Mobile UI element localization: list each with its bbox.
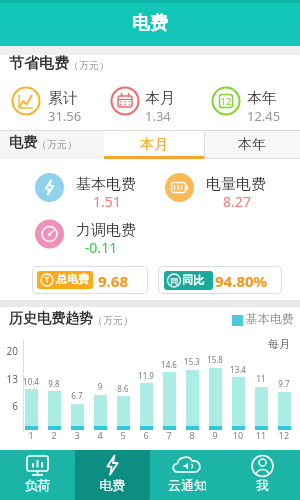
- staticText: 云通知: [150, 477, 225, 493]
- staticText: 94.80%: [215, 271, 268, 291]
- staticText: 节省电费: [9, 54, 69, 73]
- staticText: 12: [272, 429, 296, 441]
- staticText: 电量电费: [206, 175, 266, 194]
- button[interactable]: [0, 450, 75, 500]
- button[interactable]: 总电费: [32, 266, 148, 294]
- staticText: 11.9: [134, 370, 158, 381]
- staticText: 1: [19, 429, 43, 441]
- staticText: -0.11: [70, 238, 132, 257]
- staticText: 9: [203, 429, 227, 441]
- staticText: 每月: [268, 337, 290, 351]
- staticText: 7: [157, 429, 181, 441]
- staticText: 15.8: [203, 354, 227, 365]
- staticText: 2: [42, 429, 66, 441]
- button[interactable]: [75, 450, 150, 500]
- staticText: 14.6: [157, 359, 181, 370]
- staticText: （万元）: [37, 138, 77, 151]
- staticText: 13.4: [226, 364, 250, 375]
- staticText: 10: [226, 429, 250, 441]
- staticText: 电费: [75, 477, 150, 493]
- button[interactable]: [160, 168, 290, 212]
- button[interactable]: [20, 168, 150, 212]
- button[interactable]: 电费: [0, 0, 300, 46]
- button[interactable]: 本月: [104, 131, 204, 159]
- staticText: 8.27: [206, 192, 268, 211]
- button[interactable]: [0, 76, 100, 130]
- staticText: 基本电费: [246, 311, 294, 326]
- staticText: 9.68: [98, 271, 128, 291]
- staticText: 负荷: [0, 477, 75, 493]
- staticText: 12.45: [247, 107, 281, 125]
- staticText: 10.4: [19, 376, 43, 387]
- staticText: 总电费: [56, 272, 89, 286]
- staticText: 同比: [182, 273, 204, 287]
- staticText: 3: [65, 429, 89, 441]
- staticText: 1.34: [145, 107, 171, 125]
- button[interactable]: [150, 450, 225, 500]
- staticText: 20: [0, 344, 18, 358]
- staticText: 我: [225, 477, 300, 493]
- button[interactable]: [20, 214, 150, 258]
- staticText: 本年: [247, 89, 277, 108]
- staticText: 力调电费: [76, 221, 136, 240]
- button[interactable]: [200, 76, 300, 130]
- staticText: 累计: [48, 89, 78, 108]
- staticText: 1.51: [76, 192, 138, 211]
- staticText: 4: [88, 429, 112, 441]
- staticText: 9: [88, 381, 112, 392]
- staticText: 8.6: [111, 383, 135, 394]
- staticText: 8: [180, 429, 204, 441]
- button[interactable]: 同比: [158, 266, 282, 294]
- staticText: （万元）: [69, 59, 109, 72]
- staticText: 电费: [9, 134, 37, 152]
- staticText: 历史电费趋势: [9, 310, 93, 328]
- button[interactable]: [225, 450, 300, 500]
- button[interactable]: 本年: [204, 131, 300, 159]
- button[interactable]: [100, 76, 200, 130]
- staticText: 本月: [145, 89, 175, 108]
- staticText: 基本电费: [76, 175, 136, 194]
- staticText: 同: [168, 276, 180, 286]
- staticText: 6: [0, 399, 18, 413]
- staticText: 6: [134, 429, 158, 441]
- staticText: 31.56: [48, 107, 82, 125]
- staticText: 11: [249, 373, 273, 384]
- staticText: （万元）: [93, 314, 133, 327]
- staticText: 电费: [132, 12, 168, 35]
- staticText: 本月: [140, 136, 168, 154]
- staticText: 13: [0, 372, 18, 386]
- staticText: 5: [111, 429, 135, 441]
- staticText: 12: [219, 95, 233, 107]
- staticText: 9.7: [272, 378, 296, 389]
- staticText: 11: [249, 429, 273, 441]
- staticText: 9.8: [42, 378, 66, 389]
- staticText: 本年: [238, 136, 266, 154]
- staticText: 6.7: [65, 390, 89, 401]
- staticText: 15.3: [180, 356, 204, 367]
